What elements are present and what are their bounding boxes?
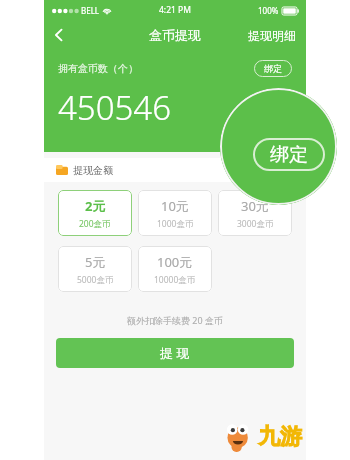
staticText: 10元	[161, 197, 189, 215]
staticText: 提 现	[160, 344, 190, 362]
staticText: 拥有盒币数（个）	[58, 62, 138, 75]
staticText: 提现明细	[248, 28, 296, 43]
staticText: 100元	[157, 253, 193, 271]
button[interactable]: 提 现	[56, 338, 294, 368]
staticText: 450546	[58, 85, 172, 130]
staticText: 额外扣除手续费 20 盒币	[44, 314, 306, 326]
button[interactable]: 绑定	[220, 88, 337, 205]
button[interactable]: 5元	[58, 246, 132, 292]
staticText: 1000盒币	[157, 218, 194, 230]
staticText: 3000盒币	[237, 218, 274, 230]
staticText: 5000盒币	[77, 274, 114, 286]
button[interactable]: 100元	[138, 246, 212, 292]
button[interactable]: Back	[44, 20, 74, 50]
staticText: 绑定	[270, 143, 308, 167]
staticText: 10000盒币	[154, 274, 196, 286]
staticText: BELL	[81, 5, 100, 16]
staticText: 4:21 PM	[159, 4, 191, 16]
staticText: 盒币提现	[149, 27, 201, 43]
staticText: 100%	[258, 5, 279, 16]
staticText: 5元	[85, 253, 106, 271]
button[interactable]: 绑定	[254, 60, 292, 77]
button[interactable]: 2元	[58, 190, 132, 236]
staticText: 200盒币	[79, 218, 111, 230]
staticText: 九游	[258, 423, 302, 451]
staticText: 绑定	[264, 63, 282, 74]
button[interactable]: 提现明细	[248, 28, 296, 43]
button[interactable]: 30元	[218, 190, 292, 236]
staticText: 提现金额	[73, 164, 113, 177]
staticText: 30元	[241, 197, 269, 215]
button[interactable]: 10元	[138, 190, 212, 236]
staticText: 2元	[85, 197, 106, 215]
